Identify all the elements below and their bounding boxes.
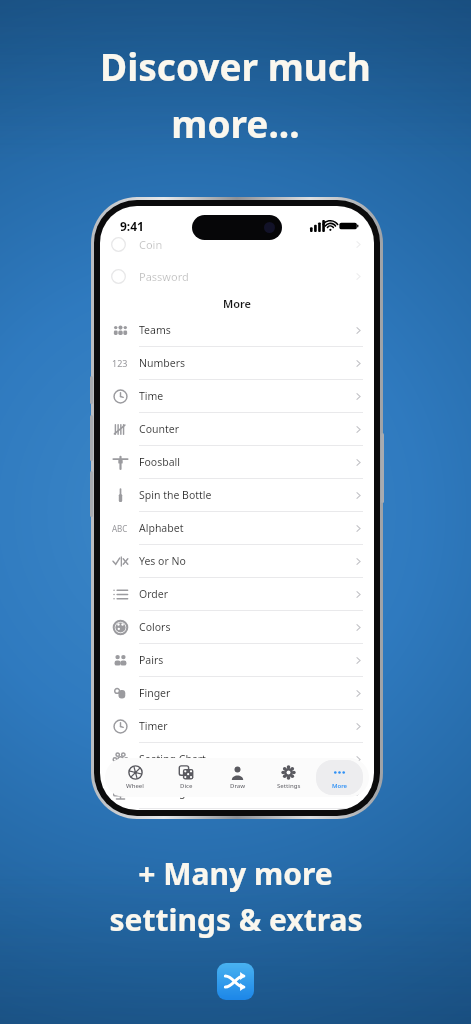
staticText: More (332, 782, 348, 790)
staticText: Numbers (139, 356, 186, 370)
button[interactable]: Colors (100, 611, 374, 644)
button[interactable]: Draw (214, 760, 261, 795)
button[interactable]: Time (100, 380, 374, 413)
button[interactable]: Spin the Bottle (100, 479, 374, 512)
button[interactable]: Teams (100, 314, 374, 347)
staticText: 123 (112, 357, 128, 369)
button[interactable]: Counter (100, 413, 374, 446)
staticText: Dice (180, 782, 193, 790)
staticText: Colors (139, 620, 171, 634)
staticText: Matching (139, 785, 186, 799)
staticText: more... (171, 98, 300, 148)
staticText: Finger (139, 686, 171, 700)
staticText: Counter (139, 422, 180, 436)
button[interactable]: Order (100, 578, 374, 611)
staticText: Password (139, 269, 189, 284)
button[interactable]: Finger (100, 677, 374, 710)
staticText: Draw (230, 782, 246, 790)
staticText: Yes or No (139, 554, 186, 568)
button[interactable]: App icon (217, 963, 254, 1000)
button[interactable]: Pairs (100, 644, 374, 677)
button[interactable]: Foosball (100, 446, 374, 479)
staticText: Alphabet (139, 521, 184, 535)
staticText: Wheel (126, 782, 144, 790)
button[interactable]: Yes or No (100, 545, 374, 578)
staticText: Timer (139, 719, 168, 733)
button[interactable]: Matching (100, 776, 374, 809)
staticText: Order (139, 587, 169, 601)
button[interactable]: Settings (265, 760, 312, 795)
staticText: ABC (112, 523, 128, 534)
staticText: 9:41 (120, 218, 144, 234)
button[interactable]: Wheel (111, 760, 159, 795)
staticText: Coin (139, 237, 163, 252)
button[interactable]: ABC (100, 512, 374, 545)
staticText: Teams (139, 323, 171, 337)
button[interactable]: More (316, 760, 363, 795)
staticText: Foosball (139, 455, 180, 469)
button[interactable]: Timer (100, 710, 374, 743)
button[interactable]: 123 (100, 347, 374, 380)
staticText: More (223, 296, 251, 311)
button[interactable]: Dice (163, 760, 210, 795)
staticText: + Many more (138, 853, 333, 894)
staticText: Settings (277, 782, 301, 790)
staticText: Spin the Bottle (139, 488, 212, 502)
staticText: Discover much (100, 41, 371, 91)
staticText: Seating Chart (139, 752, 206, 766)
button[interactable]: Seating Chart (100, 743, 374, 776)
staticText: Pairs (139, 653, 164, 667)
staticText: Time (139, 389, 164, 403)
staticText: settings & extras (109, 899, 363, 940)
